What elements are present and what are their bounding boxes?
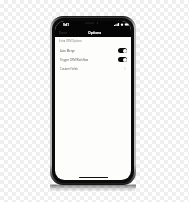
other: Open Custom Fields xyxy=(124,67,126,70)
staticText: Trigger CRM Workflow xyxy=(60,58,89,62)
button[interactable]: Custom Fields xyxy=(55,64,131,73)
staticText: Done xyxy=(59,31,68,35)
staticText: 9:41 xyxy=(63,23,69,27)
staticText: Extra CRM Options xyxy=(59,39,82,43)
button[interactable]: Trigger CRM Workflow xyxy=(55,55,131,64)
staticText: Auto Merge xyxy=(60,49,75,53)
button[interactable]: Auto Merge xyxy=(55,46,131,55)
staticText: Options xyxy=(88,30,102,35)
staticText: Custom Fields xyxy=(60,67,78,71)
